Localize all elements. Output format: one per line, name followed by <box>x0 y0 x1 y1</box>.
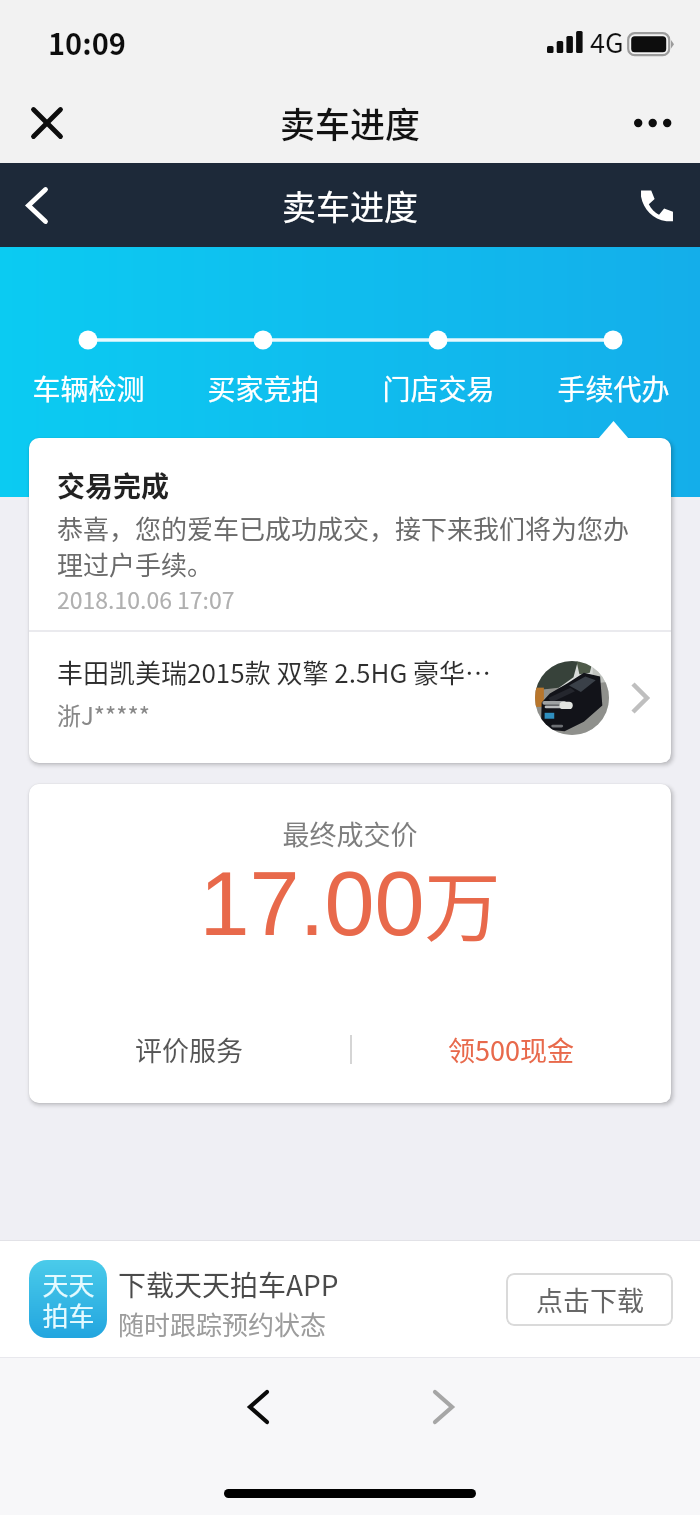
staticText: 最终成交价 <box>29 814 671 853</box>
staticText: 下载天天拍车APP <box>118 1264 339 1305</box>
button[interactable]: Close <box>17 93 77 153</box>
staticText: 10:09 <box>48 21 126 63</box>
button[interactable]: Back <box>228 1377 288 1437</box>
staticText: 浙J***** <box>57 697 150 732</box>
button[interactable]: 丰田凯美瑞2015款 双擎 2.5HG 豪华… <box>29 632 671 763</box>
button[interactable]: 点击下载 <box>506 1273 673 1326</box>
button[interactable]: 评价服务 <box>29 1016 349 1082</box>
staticText: 买家竞拍 <box>207 368 320 408</box>
staticText: 点击下载 <box>536 1280 644 1319</box>
button[interactable]: 车辆检测 <box>16 368 160 408</box>
staticText: 随时跟踪预约状态 <box>118 1305 327 1343</box>
button[interactable]: Back <box>7 175 67 235</box>
other: Car details <box>631 682 649 714</box>
staticText: 2018.10.06 17:07 <box>57 582 235 615</box>
button[interactable]: 门店交易 <box>366 368 510 408</box>
staticText: 丰田凯美瑞2015款 双擎 2.5HG 豪华… <box>57 653 492 691</box>
button[interactable]: Call <box>628 176 686 234</box>
staticText: 评价服务 <box>135 1030 243 1069</box>
staticText: 卖车进度 <box>280 97 421 148</box>
staticText: 恭喜，您的爱车已成功成交，接下来我们将为您办理过户手续。 <box>57 509 643 582</box>
button[interactable]: 买家竞拍 <box>191 368 335 408</box>
staticText: 17.00万 <box>29 847 671 957</box>
staticText: 4G <box>590 22 624 61</box>
staticText: 领500现金 <box>448 1030 574 1069</box>
staticText: 交易完成 <box>57 465 170 506</box>
button[interactable]: More options <box>625 95 681 151</box>
button[interactable]: Forward <box>413 1377 473 1437</box>
staticText: 手续代办 <box>557 368 670 408</box>
staticText: 门店交易 <box>382 368 495 408</box>
staticText: 车辆检测 <box>32 368 145 408</box>
button[interactable]: 领500现金 <box>351 1016 671 1082</box>
staticText: 天天 拍车 <box>42 1265 95 1333</box>
staticText: 卖车进度 <box>282 181 418 230</box>
button[interactable]: 手续代办 <box>541 368 685 408</box>
